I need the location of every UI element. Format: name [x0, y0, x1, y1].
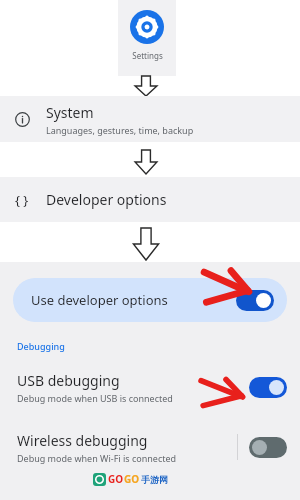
- staticText: Developer options: [46, 190, 167, 209]
- button[interactable]: USB debugging: [0, 364, 300, 410]
- button[interactable]: Settings: [118, 0, 176, 76]
- staticText: Languages, gestures, time, backup: [46, 124, 194, 136]
- button[interactable]: Toggle off: [249, 437, 287, 458]
- staticText: 手游网: [141, 474, 168, 485]
- staticText: Debugging: [17, 340, 65, 352]
- staticText: Debug mode when USB is connected: [17, 392, 173, 404]
- button[interactable]: System: [0, 96, 300, 142]
- staticText: { }: [15, 191, 29, 209]
- other: Settings: [130, 10, 164, 44]
- staticText: Wireless debugging: [17, 431, 148, 450]
- button[interactable]: Use developer options: [13, 278, 287, 322]
- staticText: Settings: [132, 50, 163, 61]
- staticText: USB debugging: [17, 371, 120, 390]
- staticText: System: [46, 103, 94, 122]
- button[interactable]: Wireless debugging: [0, 424, 300, 470]
- button[interactable]: Toggle on: [249, 377, 287, 398]
- button[interactable]: { }: [0, 177, 300, 222]
- staticText: GO: [108, 472, 124, 486]
- staticText: Debug mode when Wi-Fi is connected: [17, 452, 177, 464]
- staticText: Use developer options: [31, 291, 168, 309]
- staticText: GO: [124, 472, 140, 486]
- button[interactable]: Toggle on: [236, 290, 274, 311]
